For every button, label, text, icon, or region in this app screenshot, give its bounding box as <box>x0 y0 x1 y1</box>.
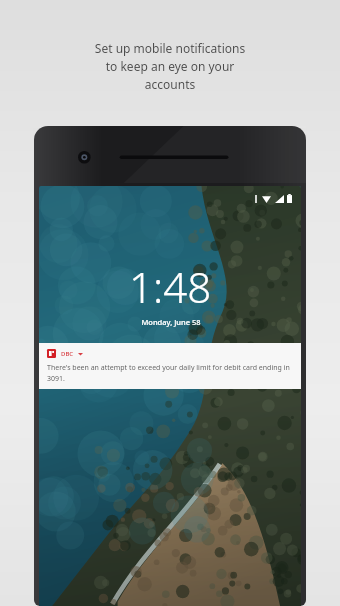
staticText: Set up mobile notifications to keep an e… <box>0 40 340 93</box>
staticText: 1:48 <box>129 258 212 315</box>
button[interactable]: DBC <box>39 343 301 389</box>
staticText: Monday, June 58 <box>141 317 201 327</box>
staticText: There's been an attempt to exceed your d… <box>47 363 293 383</box>
button[interactable]: 1:48 <box>129 258 212 327</box>
staticText: DBC <box>61 350 74 358</box>
